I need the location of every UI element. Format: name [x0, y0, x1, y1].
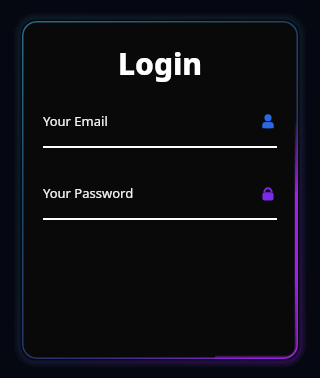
staticText: Login	[22, 43, 298, 84]
staticText: Your Email	[43, 112, 108, 130]
other: Email account	[259, 112, 277, 130]
other: Password	[259, 184, 277, 202]
button[interactable]: Your Password	[43, 184, 277, 220]
button[interactable]: Your Email	[43, 112, 277, 148]
staticText: Your Password	[43, 184, 134, 202]
